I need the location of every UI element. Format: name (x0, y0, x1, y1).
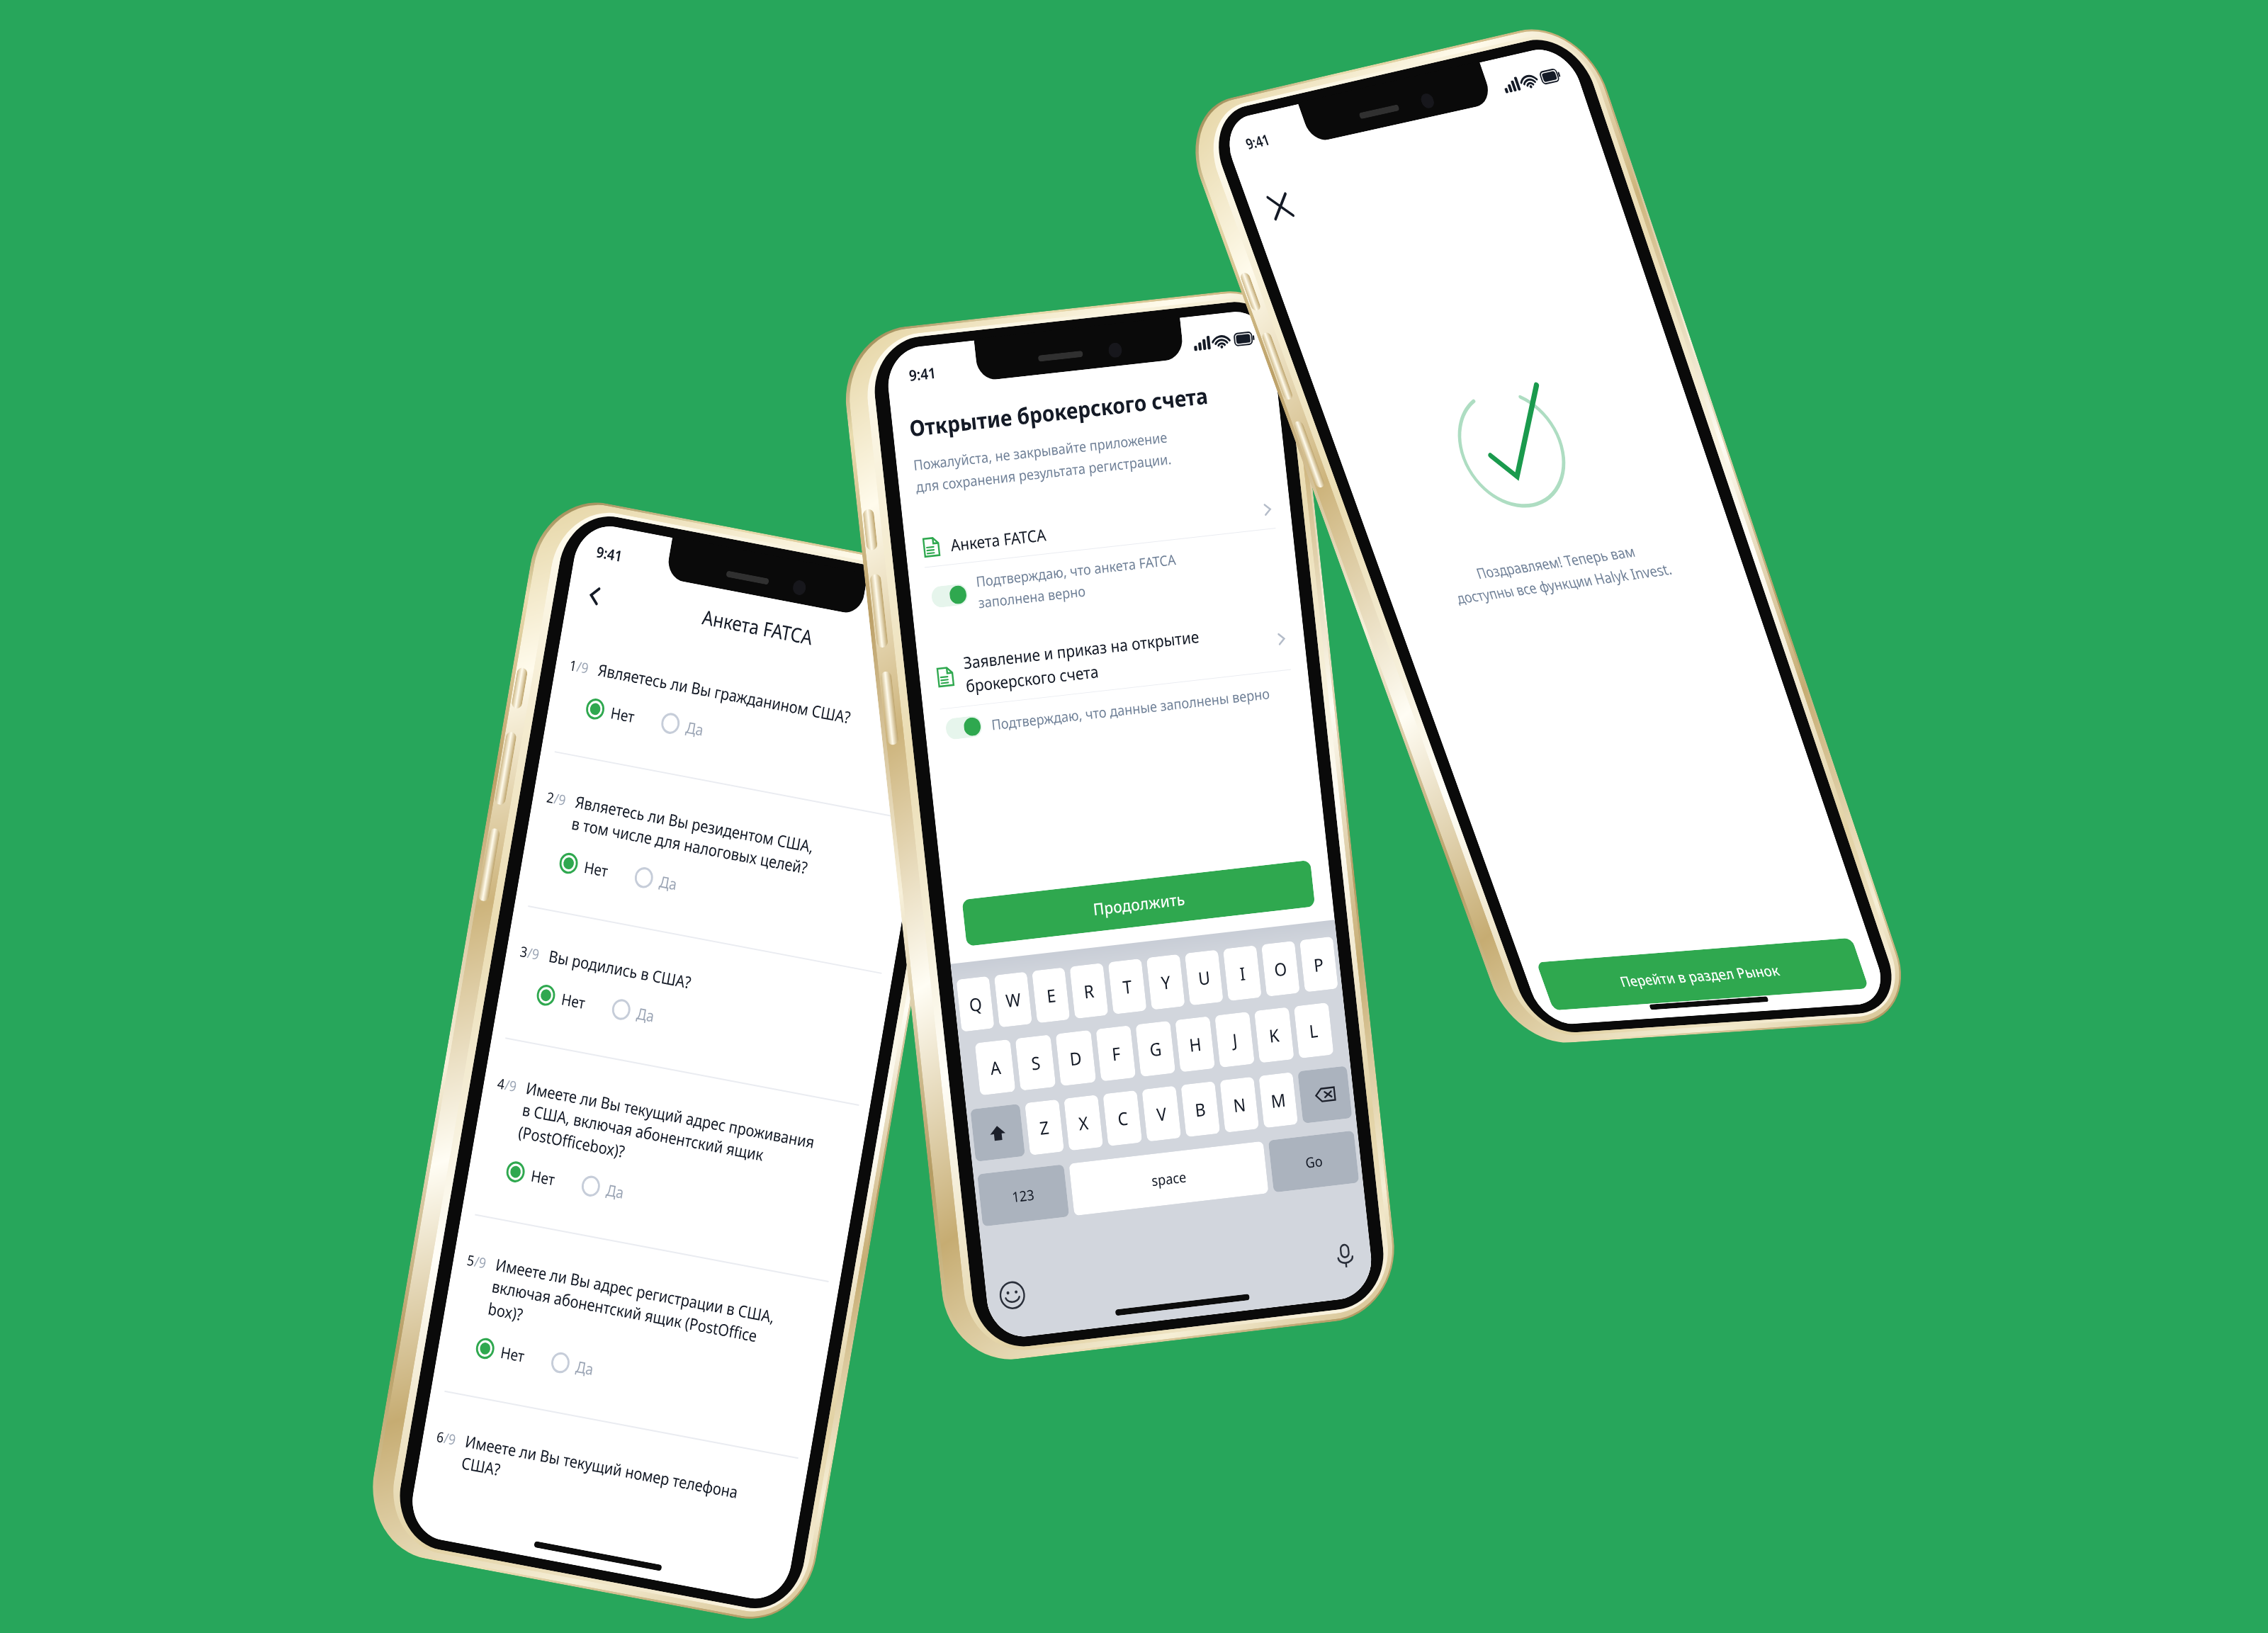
button[interactable]: N (1220, 1077, 1259, 1133)
button[interactable]: Нет (584, 697, 636, 727)
staticText: Нет (530, 1164, 557, 1190)
staticText: L (1308, 1018, 1319, 1043)
staticText: O (1273, 956, 1288, 981)
button[interactable]: Z (1025, 1099, 1064, 1155)
button[interactable]: P (1299, 936, 1338, 992)
button[interactable]: Подтверждаю, что анкета FATCA заполнена … (930, 539, 1277, 617)
staticText: Да (605, 1179, 626, 1203)
button[interactable]: Back (576, 575, 613, 616)
staticText: Да (574, 1355, 596, 1380)
button[interactable]: Перейти в раздел Рынок (1536, 938, 1869, 1010)
button[interactable]: Да (660, 711, 706, 740)
staticText: Y (1160, 969, 1172, 995)
staticText: Да (635, 1002, 656, 1026)
staticText: N (1232, 1092, 1247, 1117)
button[interactable]: Close (1255, 181, 1305, 231)
staticText: Z (1038, 1115, 1051, 1140)
button[interactable]: K (1254, 1007, 1294, 1063)
button[interactable]: Нет (474, 1336, 526, 1366)
button[interactable]: Подтверждаю, что данные заполнены верно (945, 680, 1290, 740)
button[interactable]: Y (1146, 954, 1185, 1010)
staticText: 9:41 (595, 542, 624, 567)
button[interactable]: G (1135, 1021, 1176, 1077)
staticText: 9:41 (1243, 130, 1272, 154)
staticText: Имеете ли Вы текущий номер телефона США? (460, 1430, 740, 1525)
button[interactable] (1298, 1066, 1352, 1124)
staticText: Имеете ли Вы адрес регистрации в США, вк… (486, 1253, 776, 1372)
button[interactable]: Нет (505, 1160, 557, 1190)
staticText: A (989, 1055, 1002, 1080)
staticText: /9 (575, 657, 590, 678)
staticText: W (1004, 987, 1022, 1012)
staticText: Go (1304, 1151, 1324, 1172)
button[interactable]: Q (956, 976, 994, 1032)
button[interactable]: L (1294, 1002, 1334, 1059)
button[interactable]: B (1181, 1081, 1220, 1137)
button[interactable]: 123 (977, 1164, 1069, 1227)
staticText: T (1122, 974, 1133, 999)
button[interactable]: Да (550, 1351, 596, 1380)
staticText: C (1116, 1106, 1129, 1131)
staticText: Продолжить (1092, 887, 1186, 920)
staticText: Нет (560, 988, 587, 1013)
staticText: I (1239, 961, 1247, 985)
button[interactable]: Да (633, 865, 679, 895)
button[interactable]: C (1103, 1090, 1142, 1146)
button[interactable]: I (1223, 945, 1262, 1001)
button[interactable]: Нет (535, 983, 587, 1013)
staticText: space (1151, 1167, 1187, 1190)
staticText: 123 (1011, 1185, 1036, 1207)
button[interactable]: Emoji (998, 1280, 1027, 1311)
button[interactable]: E (1032, 967, 1070, 1023)
button[interactable]: X (1064, 1095, 1103, 1151)
staticText: 1 (568, 655, 579, 676)
staticText: /9 (442, 1428, 457, 1449)
button[interactable]: U (1185, 950, 1223, 1006)
staticText: Да (684, 716, 706, 740)
staticText: 5 (466, 1250, 476, 1270)
staticText: K (1268, 1022, 1281, 1048)
staticText: Имеете ли Вы текущий адрес проживания в … (517, 1076, 816, 1197)
button[interactable] (970, 1104, 1025, 1162)
staticText: B (1194, 1097, 1207, 1122)
staticText: Вы родились в США? (547, 944, 693, 993)
button[interactable]: A (975, 1039, 1016, 1095)
staticText: 2 (545, 787, 556, 808)
staticText: U (1197, 965, 1212, 990)
button[interactable]: Да (610, 997, 656, 1026)
button[interactable]: Заявление и приказ на открытие брокерско… (934, 615, 1290, 700)
staticText: Подтверждаю, что данные заполнены верно (991, 684, 1271, 734)
staticText: Нет (583, 856, 610, 881)
staticText: E (1045, 983, 1057, 1008)
staticText: Открытие брокерского счета (908, 380, 1209, 443)
button[interactable]: Продолжить (962, 860, 1315, 946)
button[interactable]: Да (580, 1174, 626, 1203)
button[interactable]: F (1096, 1025, 1136, 1081)
button[interactable]: M (1259, 1072, 1298, 1128)
button[interactable]: V (1142, 1086, 1181, 1142)
button[interactable]: H (1175, 1016, 1215, 1072)
staticText: F (1111, 1041, 1122, 1066)
staticText: X (1077, 1110, 1090, 1135)
button[interactable]: J (1215, 1012, 1255, 1068)
button[interactable]: Dictate (1331, 1241, 1360, 1272)
staticText: /9 (526, 943, 541, 964)
button[interactable]: R (1070, 963, 1108, 1019)
button[interactable]: Нет (558, 851, 610, 881)
staticText: 6 (435, 1427, 446, 1447)
button[interactable]: T (1108, 958, 1147, 1014)
button[interactable]: S (1015, 1035, 1056, 1091)
button[interactable]: O (1261, 941, 1300, 997)
button[interactable]: W (994, 972, 1032, 1028)
button[interactable]: Анкета FATCA (921, 498, 1275, 559)
staticText: Да (658, 870, 679, 895)
staticText: Анкета FATCA (700, 603, 815, 651)
staticText: Поздравляем! Теперь вам доступны все фун… (1392, 528, 1733, 615)
button[interactable]: Go (1268, 1130, 1359, 1193)
staticText: Являетесь ли Вы гражданином США? (597, 658, 853, 728)
staticText: G (1148, 1036, 1163, 1061)
staticText: Пожалуйста, не закрывайте приложение для… (912, 427, 1172, 496)
button[interactable]: space (1069, 1141, 1269, 1216)
button[interactable]: D (1055, 1030, 1096, 1086)
staticText: Нет (609, 702, 636, 727)
